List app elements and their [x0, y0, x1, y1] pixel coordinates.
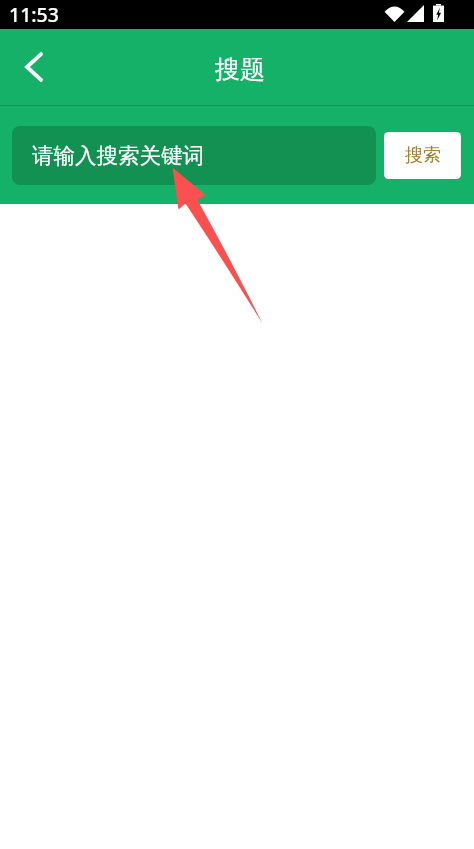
- staticText: 11:53: [9, 1, 59, 28]
- staticText: 搜索: [405, 144, 441, 167]
- button[interactable]: 搜索: [384, 132, 461, 179]
- staticText: 搜题: [215, 54, 265, 85]
- staticText: 请输入搜索关键词: [32, 142, 204, 169]
- button[interactable]: 请输入搜索关键词: [12, 126, 376, 185]
- button[interactable]: Back: [11, 44, 57, 90]
